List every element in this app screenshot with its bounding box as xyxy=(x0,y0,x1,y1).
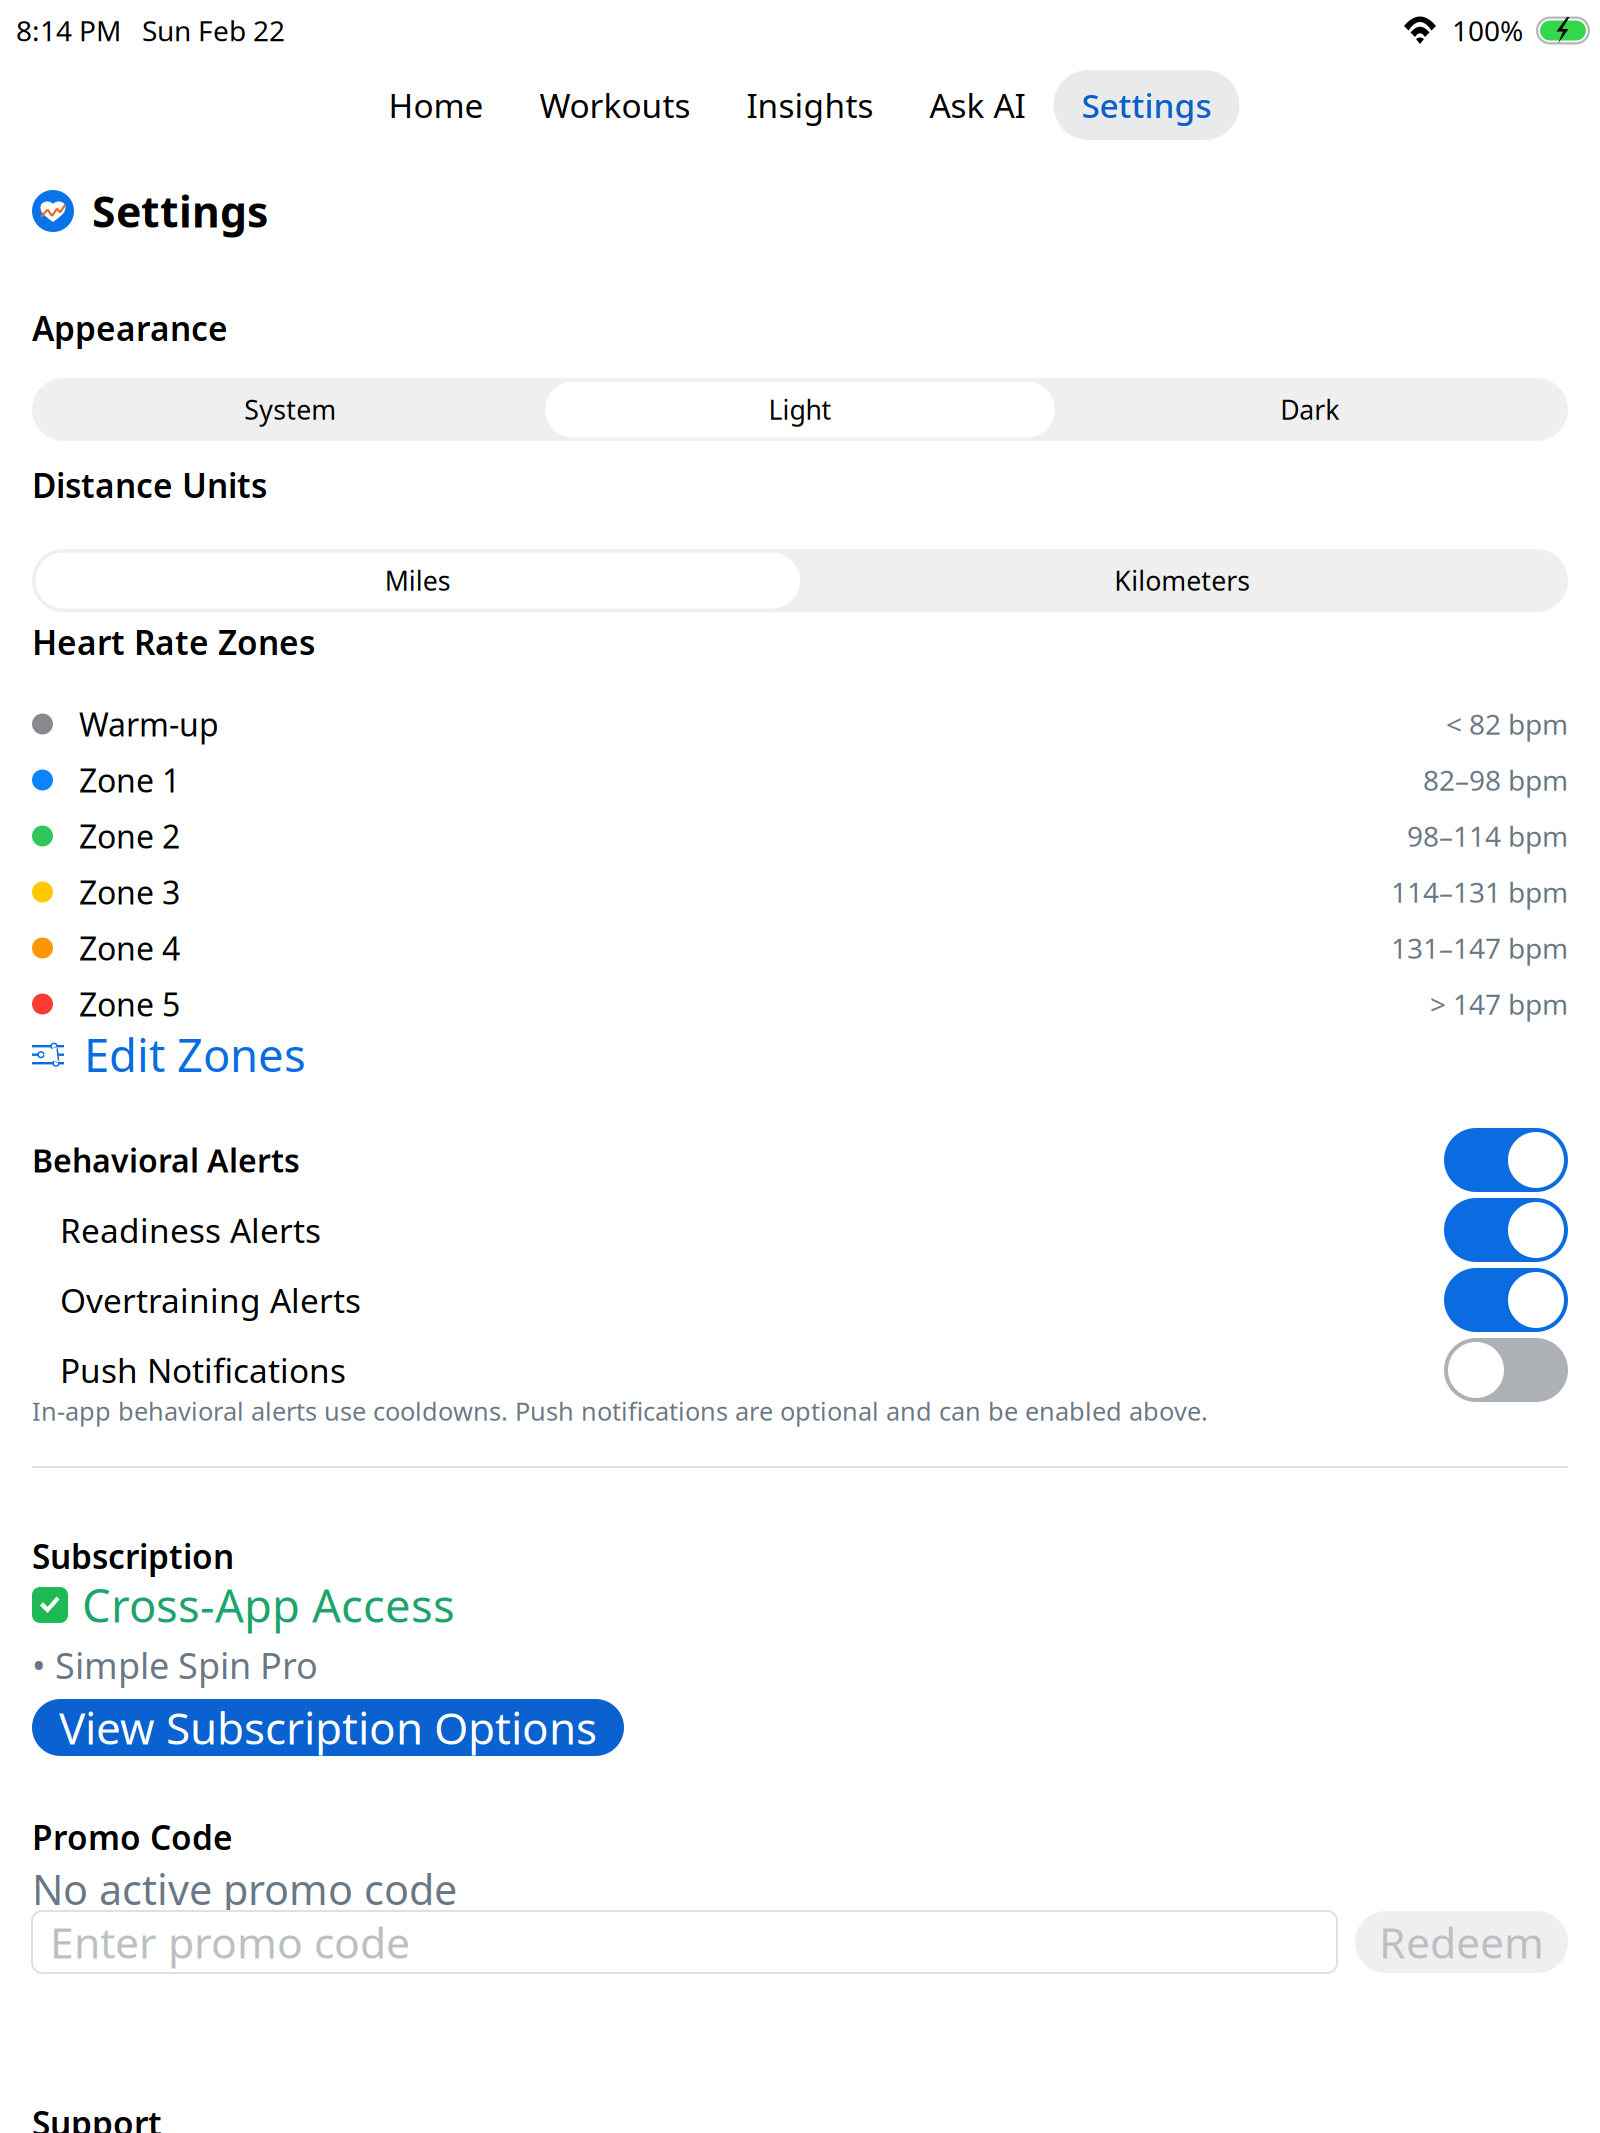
staticText: Settings xyxy=(92,183,268,239)
button[interactable]: Kilometers xyxy=(800,552,1564,608)
staticText: Appearance xyxy=(32,306,228,350)
staticText: Readiness Alerts xyxy=(60,1208,321,1252)
staticText: Light xyxy=(768,392,831,427)
button[interactable]: Home xyxy=(360,70,511,140)
staticText: Distance Units xyxy=(32,463,267,507)
staticText: Heart Rate Zones xyxy=(32,620,315,664)
staticText: Insights xyxy=(746,83,873,127)
staticText: Zone 1 xyxy=(79,759,180,801)
button[interactable]: Overtraining Alerts xyxy=(1444,1268,1568,1332)
button[interactable]: View Subscription Options xyxy=(32,1699,624,1756)
staticText: Edit Zones xyxy=(84,1024,306,1085)
staticText: Kilometers xyxy=(1114,563,1250,598)
staticText: Zone 5 xyxy=(79,983,180,1025)
button[interactable]: Workouts xyxy=(511,70,718,140)
staticText: 98–114 bpm xyxy=(1407,817,1568,855)
staticText: Support xyxy=(32,2101,162,2133)
staticText: 114–131 bpm xyxy=(1391,873,1568,911)
staticText: Workouts xyxy=(539,83,690,127)
staticText: Home xyxy=(388,83,483,127)
staticText: Enter promo code xyxy=(50,1914,410,1970)
staticText: 8:14 PM xyxy=(16,12,121,49)
button[interactable]: Redeem xyxy=(1355,1911,1568,1973)
staticText: Subscription xyxy=(32,1534,234,1578)
button[interactable]: Light xyxy=(545,381,1055,437)
staticText: Push Notifications xyxy=(60,1348,346,1392)
staticText: 82–98 bpm xyxy=(1423,761,1568,799)
button[interactable]: Behavioral Alerts xyxy=(1444,1128,1568,1192)
staticText: No active promo code xyxy=(32,1862,457,1916)
button[interactable]: Edit Zones xyxy=(32,1032,1568,1077)
button[interactable]: Readiness Alerts xyxy=(1444,1198,1568,1262)
staticText: Settings xyxy=(1081,83,1211,127)
staticText: Overtraining Alerts xyxy=(60,1278,361,1322)
button[interactable]: Settings xyxy=(1053,70,1239,140)
button[interactable]: System xyxy=(35,381,545,437)
staticText: In-app behavioral alerts use cooldowns. … xyxy=(32,1394,1208,1428)
button[interactable]: Insights xyxy=(718,70,901,140)
staticText: Behavioral Alerts xyxy=(32,1139,300,1181)
staticText: Promo Code xyxy=(32,1815,233,1859)
staticText: Ask AI xyxy=(929,83,1025,127)
button[interactable]: Dark xyxy=(1055,381,1564,437)
staticText: Cross-App Access xyxy=(82,1575,455,1635)
staticText: Zone 2 xyxy=(79,815,180,857)
staticText: 100% xyxy=(1452,12,1523,49)
staticText: Zone 4 xyxy=(79,927,180,969)
staticText: View Subscription Options xyxy=(59,1698,597,1757)
button[interactable]: Miles xyxy=(35,552,800,608)
staticText: • Simple Spin Pro xyxy=(32,1641,318,1689)
staticText: < 82 bpm xyxy=(1446,705,1568,743)
staticText: System xyxy=(244,392,336,427)
staticText: Warm-up xyxy=(79,703,219,745)
staticText: > 147 bpm xyxy=(1430,985,1568,1023)
staticText: Miles xyxy=(385,563,451,598)
button[interactable]: Ask AI xyxy=(901,70,1053,140)
staticText: Sun Feb 22 xyxy=(142,12,285,49)
staticText: Dark xyxy=(1280,392,1339,427)
staticText: 131–147 bpm xyxy=(1391,929,1568,967)
staticText: Redeem xyxy=(1379,1914,1544,1970)
button[interactable]: Push Notifications xyxy=(1444,1338,1568,1402)
staticText: Zone 3 xyxy=(79,871,180,913)
